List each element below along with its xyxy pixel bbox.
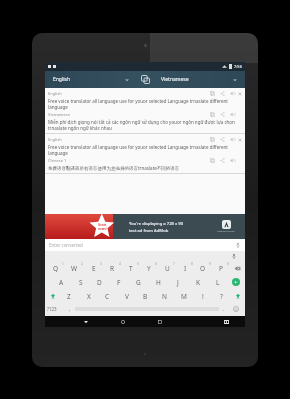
button[interactable]: Share: [219, 111, 226, 118]
button[interactable]: W: [65, 261, 84, 275]
button[interactable]: P: [212, 261, 230, 275]
staticText: X: [87, 292, 91, 301]
staticText: 9: [209, 262, 211, 266]
staticText: P: [219, 264, 223, 273]
button[interactable]: Shift: [231, 289, 244, 303]
button[interactable]: Copy: [209, 157, 216, 164]
button[interactable]: ?: [212, 289, 231, 303]
button[interactable]: English: [45, 88, 245, 133]
button[interactable]: Emoji: [229, 303, 243, 315]
staticText: ?123: [47, 306, 57, 312]
button[interactable]: Period: [219, 303, 229, 315]
button[interactable]: B: [136, 289, 155, 303]
button[interactable]: S: [71, 275, 90, 289]
staticText: 1: [62, 262, 64, 266]
staticText: W: [71, 264, 78, 273]
staticText: Chinese 1: [48, 158, 67, 163]
button[interactable]: G: [128, 275, 148, 289]
staticText: 免费语音翻译器所有语言使用为您选择的语言trnaslate不同的语言: [48, 165, 180, 171]
staticText: E: [92, 264, 96, 273]
button[interactable]: Copy: [209, 90, 216, 97]
staticText: C: [105, 292, 110, 301]
button[interactable]: Swap languages: [137, 71, 153, 88]
button[interactable]: Share: [219, 136, 226, 143]
button[interactable]: E: [84, 261, 103, 275]
button[interactable]: !: [193, 289, 212, 303]
staticText: Great news!: [98, 223, 107, 231]
staticText: L: [216, 278, 220, 287]
staticText: D: [97, 278, 102, 287]
button[interactable]: U: [158, 261, 176, 275]
button[interactable]: Comma: [65, 303, 75, 315]
button[interactable]: Y: [140, 261, 158, 275]
button[interactable]: ?123: [47, 303, 65, 315]
button[interactable]: H: [148, 275, 168, 289]
button[interactable]: A: [52, 275, 71, 289]
button[interactable]: O: [194, 261, 212, 275]
button[interactable]: F: [109, 275, 128, 289]
button[interactable]: K: [188, 275, 208, 289]
button[interactable]: I: [176, 261, 194, 275]
button[interactable]: Enter converted: [45, 239, 245, 251]
staticText: O: [200, 264, 206, 273]
staticText: Q: [53, 264, 59, 273]
staticText: Free voice translator all language use f…: [48, 144, 242, 156]
staticText: English: [53, 76, 71, 83]
button[interactable]: V: [117, 289, 136, 303]
button[interactable]: L: [208, 275, 228, 289]
staticText: 6: [155, 262, 157, 266]
staticText: You're displaying a 728 x 90: [129, 221, 184, 227]
staticText: A: [59, 278, 64, 287]
button[interactable]: Shift: [46, 289, 59, 303]
staticText: .: [223, 306, 225, 313]
button[interactable]: Switch keyboard: [221, 316, 232, 327]
button[interactable]: Voice input: [231, 253, 237, 259]
staticText: M: [181, 292, 187, 301]
staticText: Z: [67, 292, 71, 301]
button[interactable]: N: [155, 289, 174, 303]
button[interactable]: X: [79, 289, 98, 303]
button[interactable]: Copy: [209, 136, 216, 143]
staticText: Vietnamese: [161, 76, 189, 83]
button[interactable]: Advertisement: [45, 214, 245, 239]
button[interactable]: Z: [59, 289, 79, 303]
button[interactable]: Delete: [237, 137, 242, 142]
button[interactable]: Share: [219, 157, 226, 164]
staticText: H: [156, 278, 161, 287]
button[interactable]: Delete: [237, 91, 242, 96]
button[interactable]: Backspace: [230, 261, 244, 275]
staticText: G: [136, 278, 141, 287]
staticText: test ad from AdMob: [129, 228, 169, 234]
button[interactable]: T: [122, 261, 140, 275]
staticText: T: [129, 264, 133, 273]
button[interactable]: English: [45, 134, 245, 173]
staticText: F: [117, 278, 121, 287]
button[interactable]: Speak: [229, 90, 236, 97]
button[interactable]: Enter: [228, 275, 244, 289]
button[interactable]: R: [103, 261, 122, 275]
button[interactable]: M: [174, 289, 193, 303]
staticText: !: [202, 292, 204, 301]
staticText: Y: [147, 264, 151, 273]
button[interactable]: C: [98, 289, 117, 303]
button[interactable]: English: [45, 71, 137, 88]
button[interactable]: Speak: [229, 136, 236, 143]
button[interactable]: Speak: [229, 157, 236, 164]
button[interactable]: Vietnamese: [153, 71, 245, 88]
staticText: English: [48, 91, 62, 96]
button[interactable]: Back: [80, 316, 91, 327]
staticText: K: [196, 278, 201, 287]
button[interactable]: Q: [46, 261, 65, 275]
button[interactable]: Share: [219, 90, 226, 97]
staticText: 8: [191, 262, 193, 266]
staticText: 7: [173, 262, 175, 266]
staticText: 3: [100, 262, 102, 266]
button[interactable]: Recent apps: [154, 316, 165, 327]
button[interactable]: Copy: [209, 111, 216, 118]
button[interactable]: Home: [117, 316, 128, 327]
button[interactable]: Speak: [229, 111, 236, 118]
button[interactable]: J: [168, 275, 188, 289]
button[interactable]: D: [90, 275, 109, 289]
staticText: Vietnamese: [48, 112, 71, 117]
